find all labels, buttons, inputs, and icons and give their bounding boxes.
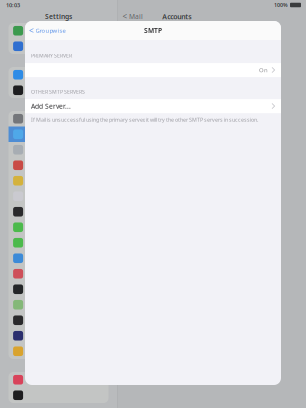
button[interactable]: On bbox=[25, 63, 281, 77]
staticText: Accounts bbox=[162, 12, 191, 21]
button[interactable] bbox=[8, 188, 108, 204]
staticText: OTHER SMTP SERVERS bbox=[31, 88, 85, 95]
button[interactable] bbox=[8, 250, 108, 266]
staticText: Add Server... bbox=[31, 102, 71, 111]
button[interactable] bbox=[8, 111, 108, 126]
button[interactable] bbox=[8, 266, 108, 281]
staticText: < bbox=[122, 11, 127, 22]
button[interactable] bbox=[8, 142, 108, 157]
staticText: 100% bbox=[274, 1, 288, 9]
staticText: SMTP bbox=[144, 26, 162, 35]
button[interactable] bbox=[8, 297, 108, 312]
staticText: < bbox=[29, 25, 34, 36]
button[interactable] bbox=[8, 219, 108, 235]
button[interactable]: Add Server... bbox=[25, 99, 281, 113]
button[interactable] bbox=[8, 38, 108, 54]
button[interactable]: Music bbox=[8, 372, 108, 387]
button[interactable] bbox=[8, 387, 108, 403]
button[interactable] bbox=[8, 343, 108, 359]
button[interactable] bbox=[8, 173, 108, 188]
button[interactable]: < bbox=[25, 22, 65, 39]
staticText: PRIMARY SERVER bbox=[31, 52, 72, 59]
button[interactable] bbox=[8, 235, 108, 250]
button[interactable] bbox=[8, 312, 108, 328]
staticText: Mail bbox=[129, 12, 143, 21]
button[interactable] bbox=[8, 82, 108, 98]
button[interactable]: < bbox=[119, 9, 146, 24]
button[interactable] bbox=[8, 204, 108, 219]
staticText: Groupwise bbox=[35, 26, 65, 34]
button[interactable] bbox=[8, 126, 108, 142]
staticText: 10:03 bbox=[6, 1, 20, 9]
button[interactable] bbox=[8, 157, 108, 173]
button[interactable] bbox=[8, 328, 108, 343]
staticText: Settings bbox=[45, 12, 72, 21]
staticText: If Mail is unsuccessful using the primar… bbox=[31, 116, 258, 123]
button[interactable] bbox=[8, 23, 108, 38]
staticText: On bbox=[259, 66, 268, 74]
button[interactable] bbox=[8, 281, 108, 297]
button[interactable] bbox=[8, 67, 108, 82]
